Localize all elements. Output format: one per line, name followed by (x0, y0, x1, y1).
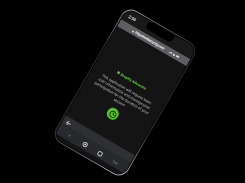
button[interactable]: Back (63, 129, 76, 142)
button[interactable]: Continue (105, 105, 121, 122)
staticText: Dial (112, 159, 119, 166)
staticText: 2:56 (127, 14, 138, 24)
button[interactable]: Home (79, 138, 91, 151)
button[interactable]: Back (63, 117, 74, 128)
staticText: Shopify Advocate (119, 72, 148, 91)
button[interactable]: Menu (109, 156, 122, 168)
staticText: httpsloadsecurity.com (135, 30, 166, 51)
button[interactable]: Recents (94, 147, 106, 159)
staticText: This application will request basic user… (90, 71, 156, 120)
